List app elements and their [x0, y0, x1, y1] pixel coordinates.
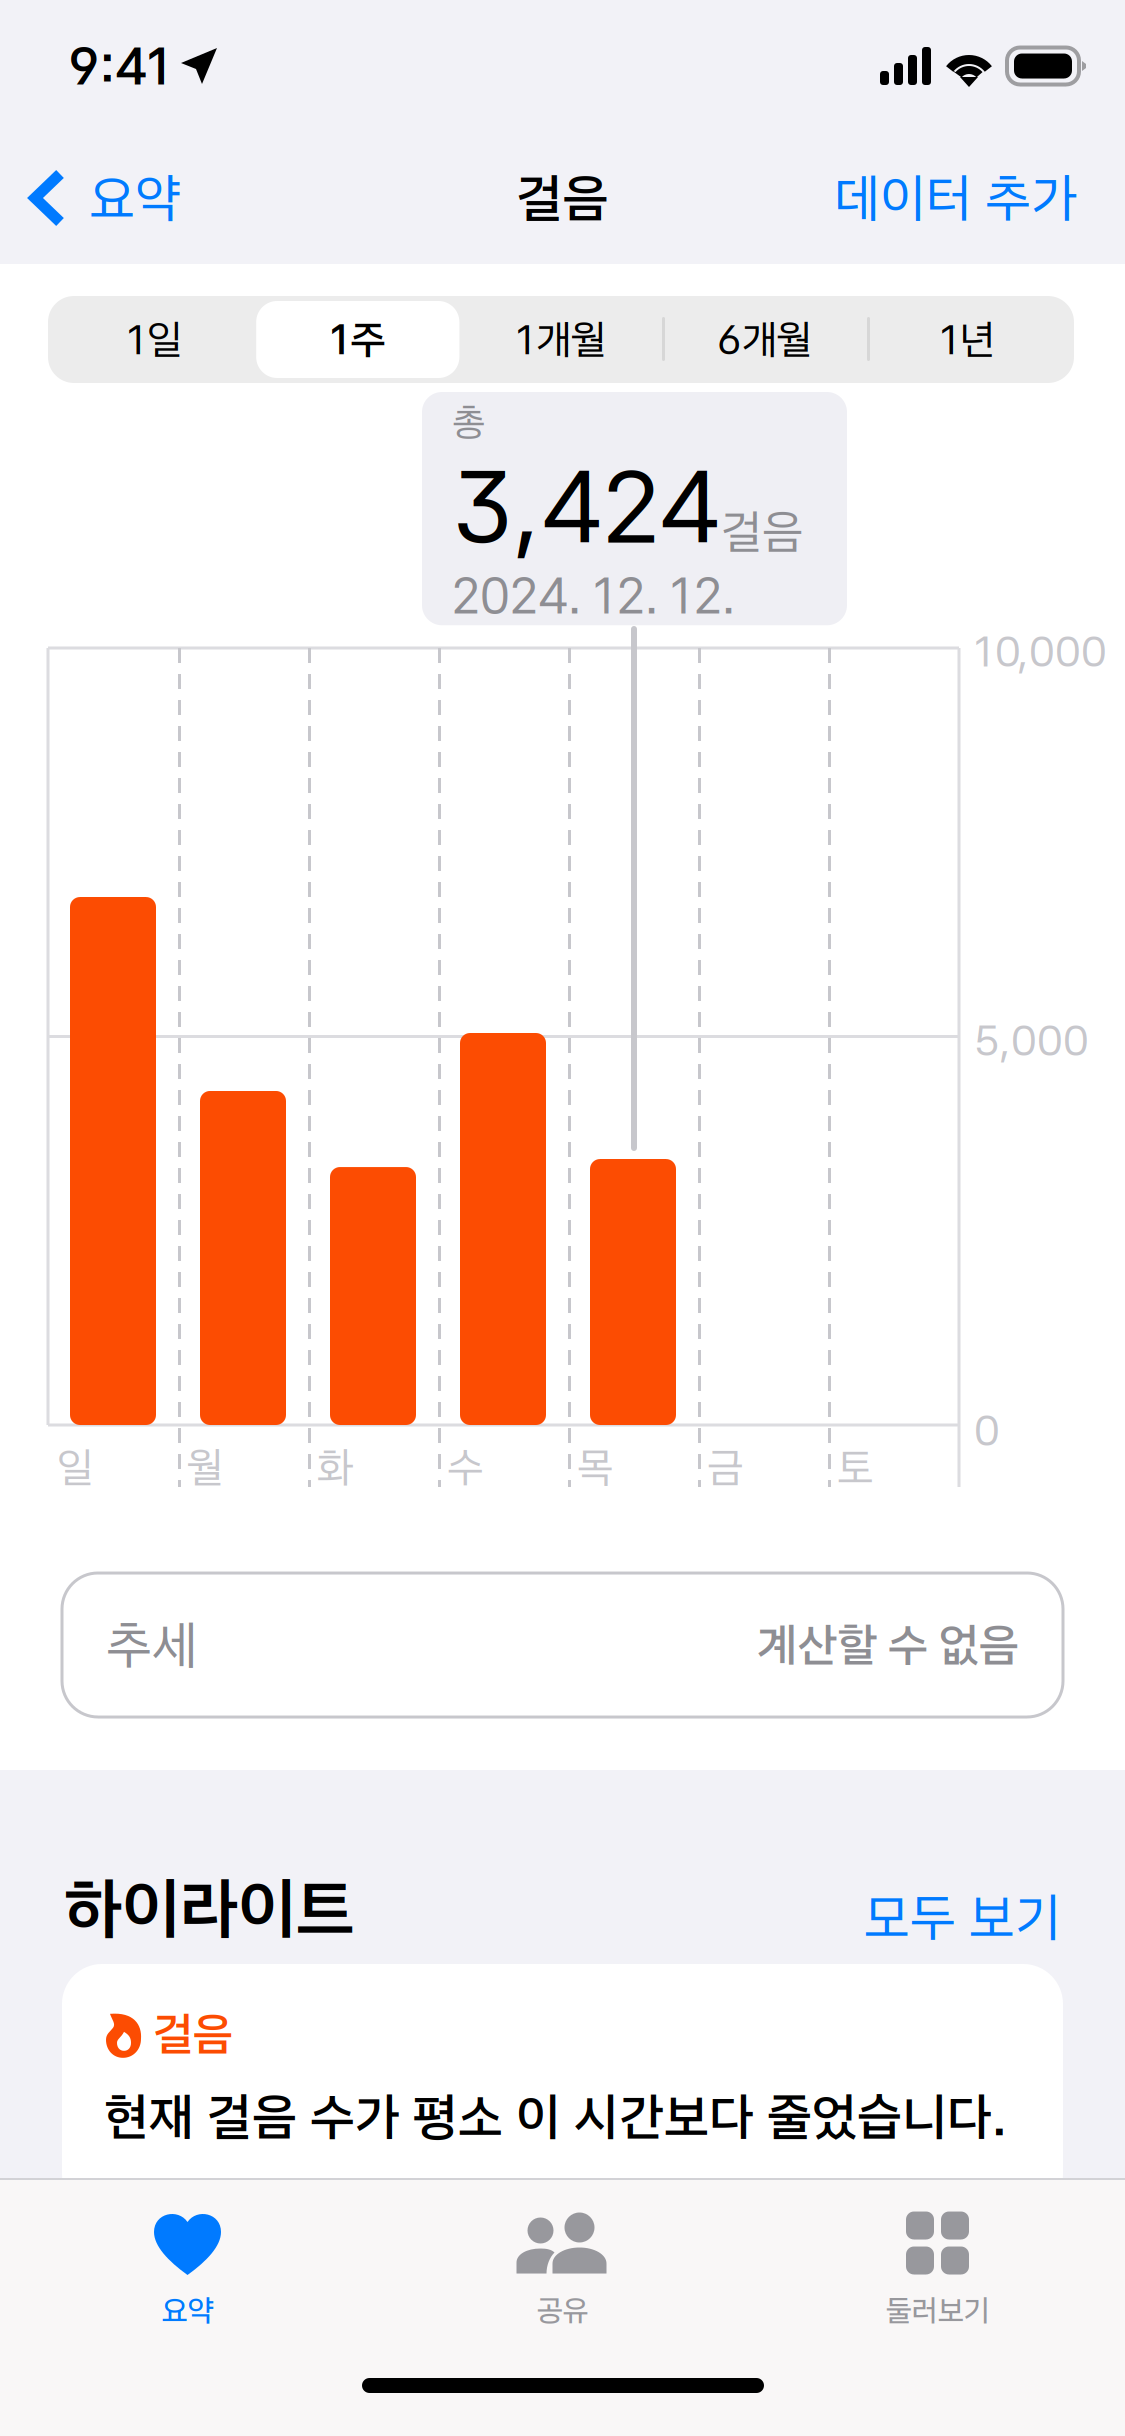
button[interactable]: 요약: [0, 2180, 375, 2329]
staticText: 5,000: [974, 1015, 1089, 1066]
staticText: 1개월: [516, 315, 606, 364]
staticText: 총: [452, 399, 485, 445]
button[interactable]: 추세: [62, 1573, 1063, 1717]
staticText: 추세: [106, 1613, 198, 1677]
staticText: 수: [447, 1442, 484, 1493]
staticText: 1년: [940, 315, 995, 364]
staticText: 걸음: [721, 503, 803, 560]
staticText: 금: [707, 1442, 744, 1493]
button[interactable]: 걸음: [62, 1964, 1063, 2214]
button[interactable]: 공유: [375, 2180, 750, 2329]
button[interactable]: 1주: [256, 301, 459, 378]
button[interactable]: 6개월: [663, 301, 866, 378]
staticText: 화: [317, 1442, 354, 1493]
staticText: 10,000: [974, 626, 1107, 677]
button[interactable]: 모두 보기: [864, 1885, 1061, 1949]
staticText: 목: [577, 1442, 614, 1493]
staticText: 월: [187, 1442, 224, 1493]
staticText: 계산할 수 없음: [757, 1617, 1019, 1673]
staticText: 토: [837, 1442, 874, 1493]
button[interactable]: 데이터 추가: [818, 150, 1077, 246]
staticText: 9:41: [68, 35, 172, 97]
staticText: 둘러보기: [885, 2292, 989, 2329]
staticText: 2024. 12. 12.: [452, 566, 735, 625]
staticText: 1일: [127, 315, 182, 364]
button[interactable]: 요약: [24, 150, 197, 246]
staticText: 요약: [89, 166, 181, 230]
button[interactable]: 1일: [53, 301, 256, 378]
staticText: 현재 걸음 수가 평소 이 시간보다 줄었습니다.: [104, 2086, 1007, 2148]
staticText: 걸음: [516, 166, 608, 230]
staticText: 1주: [330, 315, 385, 364]
staticText: 요약: [161, 2292, 213, 2329]
staticText: 하이라이트: [64, 1868, 354, 1949]
staticText: 걸음: [153, 2006, 233, 2062]
staticText: 공유: [536, 2292, 588, 2329]
staticText: 3,424: [452, 447, 721, 566]
staticText: 6개월: [717, 315, 812, 364]
button[interactable]: 1개월: [459, 301, 663, 378]
staticText: 모두 보기: [864, 1885, 1061, 1949]
staticText: 데이터 추가: [834, 166, 1077, 230]
button[interactable]: 둘러보기: [750, 2180, 1125, 2329]
staticText: 일: [57, 1442, 94, 1493]
button[interactable]: 1년: [866, 301, 1069, 378]
staticText: 0: [974, 1405, 1000, 1456]
